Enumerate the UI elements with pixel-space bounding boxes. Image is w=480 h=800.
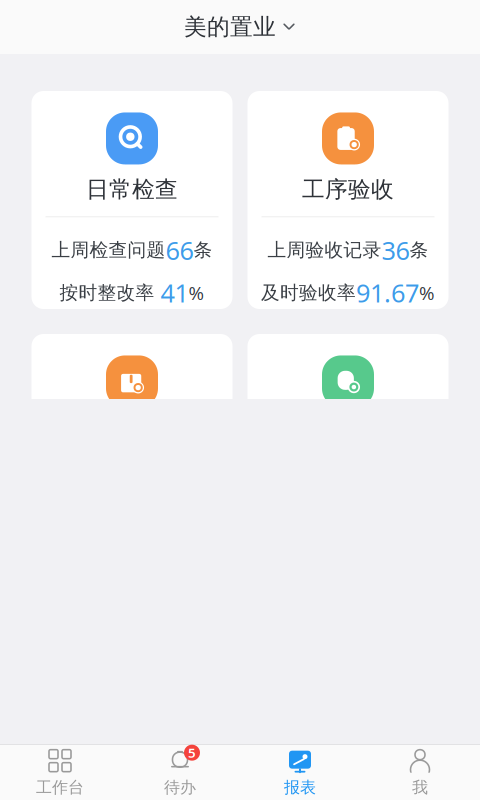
button[interactable]: 5 — [120, 744, 240, 800]
staticText: 条 — [193, 239, 212, 261]
staticText: 及时验收率 — [261, 281, 356, 304]
button[interactable]: 报表 — [240, 744, 360, 800]
button[interactable]: 我 — [360, 744, 480, 800]
staticText: 我 — [412, 778, 428, 797]
staticText: 5 — [188, 744, 196, 761]
staticText: 上周检查问题 — [51, 239, 165, 261]
staticText: 工序验收 — [302, 175, 394, 203]
staticText: 上周验收记录 — [267, 239, 381, 261]
staticText: % — [419, 280, 435, 305]
button[interactable]: 工序验收 — [247, 91, 448, 309]
staticText: 按时整改率 — [59, 281, 160, 304]
button[interactable]: 日常检查 — [31, 91, 232, 309]
staticText: % — [188, 280, 204, 305]
staticText: 工作台 — [36, 778, 84, 797]
button[interactable]: 工作台 — [0, 744, 120, 800]
button[interactable]: 材料验收 — [31, 334, 232, 552]
staticText: 报表 — [284, 778, 316, 797]
staticText: 36 — [381, 233, 409, 267]
button[interactable]: 工程巡检评估 — [247, 334, 448, 552]
staticText: 条 — [409, 239, 428, 261]
button[interactable]: 美的置业 — [184, 0, 296, 54]
staticText: 待办 — [164, 778, 196, 797]
staticText: 41 — [160, 276, 188, 309]
staticText: 日常检查 — [86, 175, 178, 203]
staticText: 美的置业 — [184, 13, 276, 41]
staticText: 66 — [165, 233, 193, 267]
staticText: 91.67 — [356, 276, 419, 309]
